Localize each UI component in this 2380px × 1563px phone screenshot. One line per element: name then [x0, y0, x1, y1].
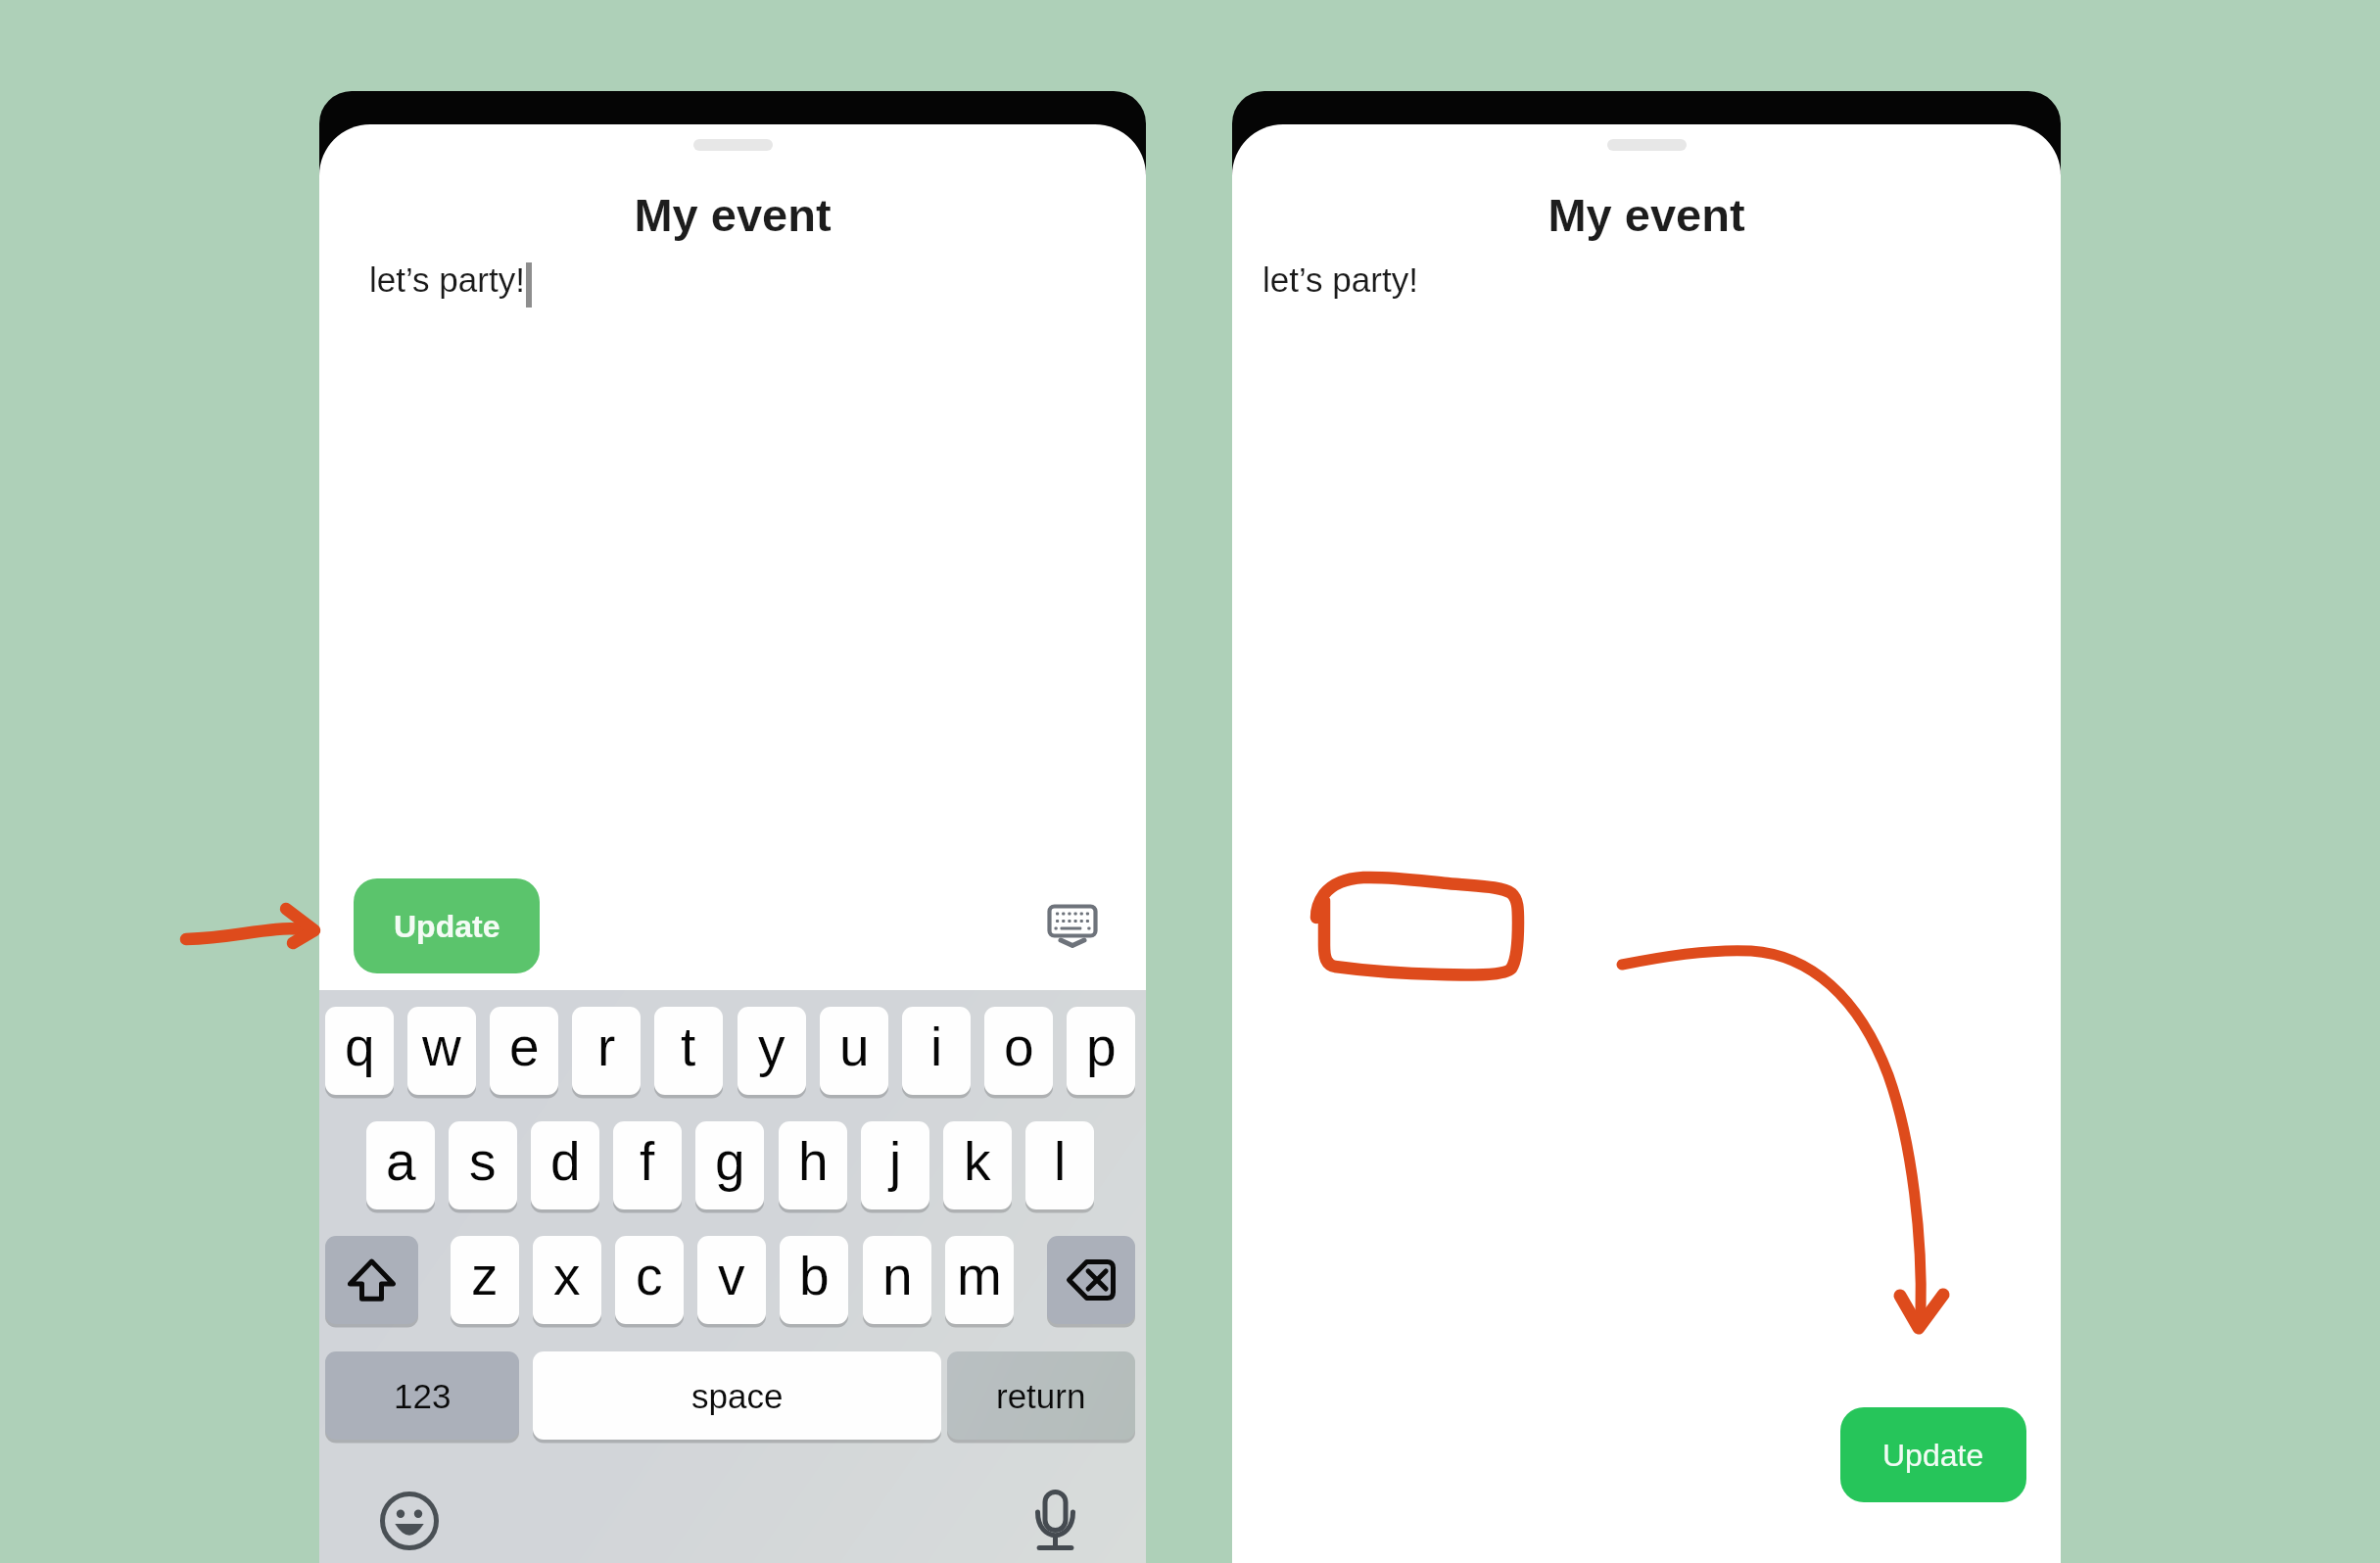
- button[interactable]: a: [366, 1121, 435, 1209]
- staticText: space: [691, 1377, 784, 1415]
- staticText: n: [882, 1246, 913, 1305]
- button[interactable]: Dictate: [1035, 1490, 1075, 1550]
- button[interactable]: d: [531, 1121, 599, 1209]
- button[interactable]: m: [945, 1236, 1014, 1324]
- staticText: j: [889, 1131, 902, 1191]
- staticText: y: [758, 1017, 785, 1076]
- staticText: a: [386, 1131, 416, 1191]
- staticText: let’s party!: [369, 260, 525, 299]
- staticText: p: [1086, 1017, 1117, 1076]
- staticText: w: [422, 1017, 461, 1076]
- button[interactable]: s: [449, 1121, 517, 1209]
- staticText: u: [839, 1017, 870, 1076]
- button[interactable]: u: [820, 1007, 888, 1095]
- button[interactable]: y: [738, 1007, 806, 1095]
- button[interactable]: 123: [325, 1351, 519, 1440]
- staticText: l: [1054, 1131, 1067, 1191]
- staticText: Update: [394, 909, 500, 944]
- button[interactable]: k: [943, 1121, 1012, 1209]
- button[interactable]: Update: [1840, 1407, 2026, 1502]
- button[interactable]: n: [863, 1236, 931, 1324]
- staticText: f: [640, 1131, 655, 1191]
- staticText: i: [930, 1017, 943, 1076]
- button[interactable]: r: [572, 1007, 641, 1095]
- staticText: x: [553, 1246, 581, 1305]
- staticText: My event: [634, 189, 832, 241]
- button[interactable]: i: [902, 1007, 971, 1095]
- button[interactable]: z: [451, 1236, 519, 1324]
- button[interactable]: o: [984, 1007, 1053, 1095]
- button[interactable]: return: [947, 1351, 1135, 1440]
- button[interactable]: e: [490, 1007, 558, 1095]
- staticText: v: [718, 1246, 745, 1305]
- button[interactable]: Hide keyboard: [1048, 905, 1097, 948]
- button[interactable]: v: [697, 1236, 766, 1324]
- button[interactable]: b: [780, 1236, 848, 1324]
- button[interactable]: g: [695, 1121, 764, 1209]
- staticText: My event: [1547, 189, 1745, 241]
- staticText: z: [471, 1246, 499, 1305]
- button[interactable]: t: [654, 1007, 723, 1095]
- staticText: c: [636, 1246, 663, 1305]
- button[interactable]: j: [861, 1121, 929, 1209]
- staticText: return: [996, 1377, 1086, 1415]
- staticText: let’s party!: [1262, 260, 1418, 299]
- staticText: Update: [1882, 1438, 1984, 1473]
- staticText: m: [957, 1246, 1002, 1305]
- button[interactable]: Emoji: [380, 1492, 439, 1550]
- staticText: g: [715, 1131, 745, 1191]
- button[interactable]: Backspace: [1047, 1236, 1135, 1324]
- button[interactable]: x: [533, 1236, 601, 1324]
- staticText: h: [798, 1131, 829, 1191]
- button[interactable]: f: [613, 1121, 682, 1209]
- staticText: o: [1004, 1017, 1034, 1076]
- button[interactable]: h: [779, 1121, 847, 1209]
- staticText: b: [799, 1246, 830, 1305]
- button[interactable]: q: [325, 1007, 394, 1095]
- button[interactable]: c: [615, 1236, 684, 1324]
- button[interactable]: w: [407, 1007, 476, 1095]
- button[interactable]: Update: [354, 878, 540, 973]
- staticText: k: [964, 1131, 991, 1191]
- staticText: r: [597, 1017, 616, 1076]
- button[interactable]: Shift: [325, 1236, 418, 1324]
- staticText: t: [681, 1017, 696, 1076]
- staticText: s: [469, 1131, 497, 1191]
- staticText: q: [345, 1017, 375, 1076]
- staticText: 123: [394, 1377, 452, 1415]
- staticText: e: [509, 1017, 540, 1076]
- button[interactable]: l: [1025, 1121, 1094, 1209]
- button[interactable]: space: [533, 1351, 941, 1440]
- button[interactable]: p: [1067, 1007, 1135, 1095]
- staticText: d: [550, 1131, 581, 1191]
